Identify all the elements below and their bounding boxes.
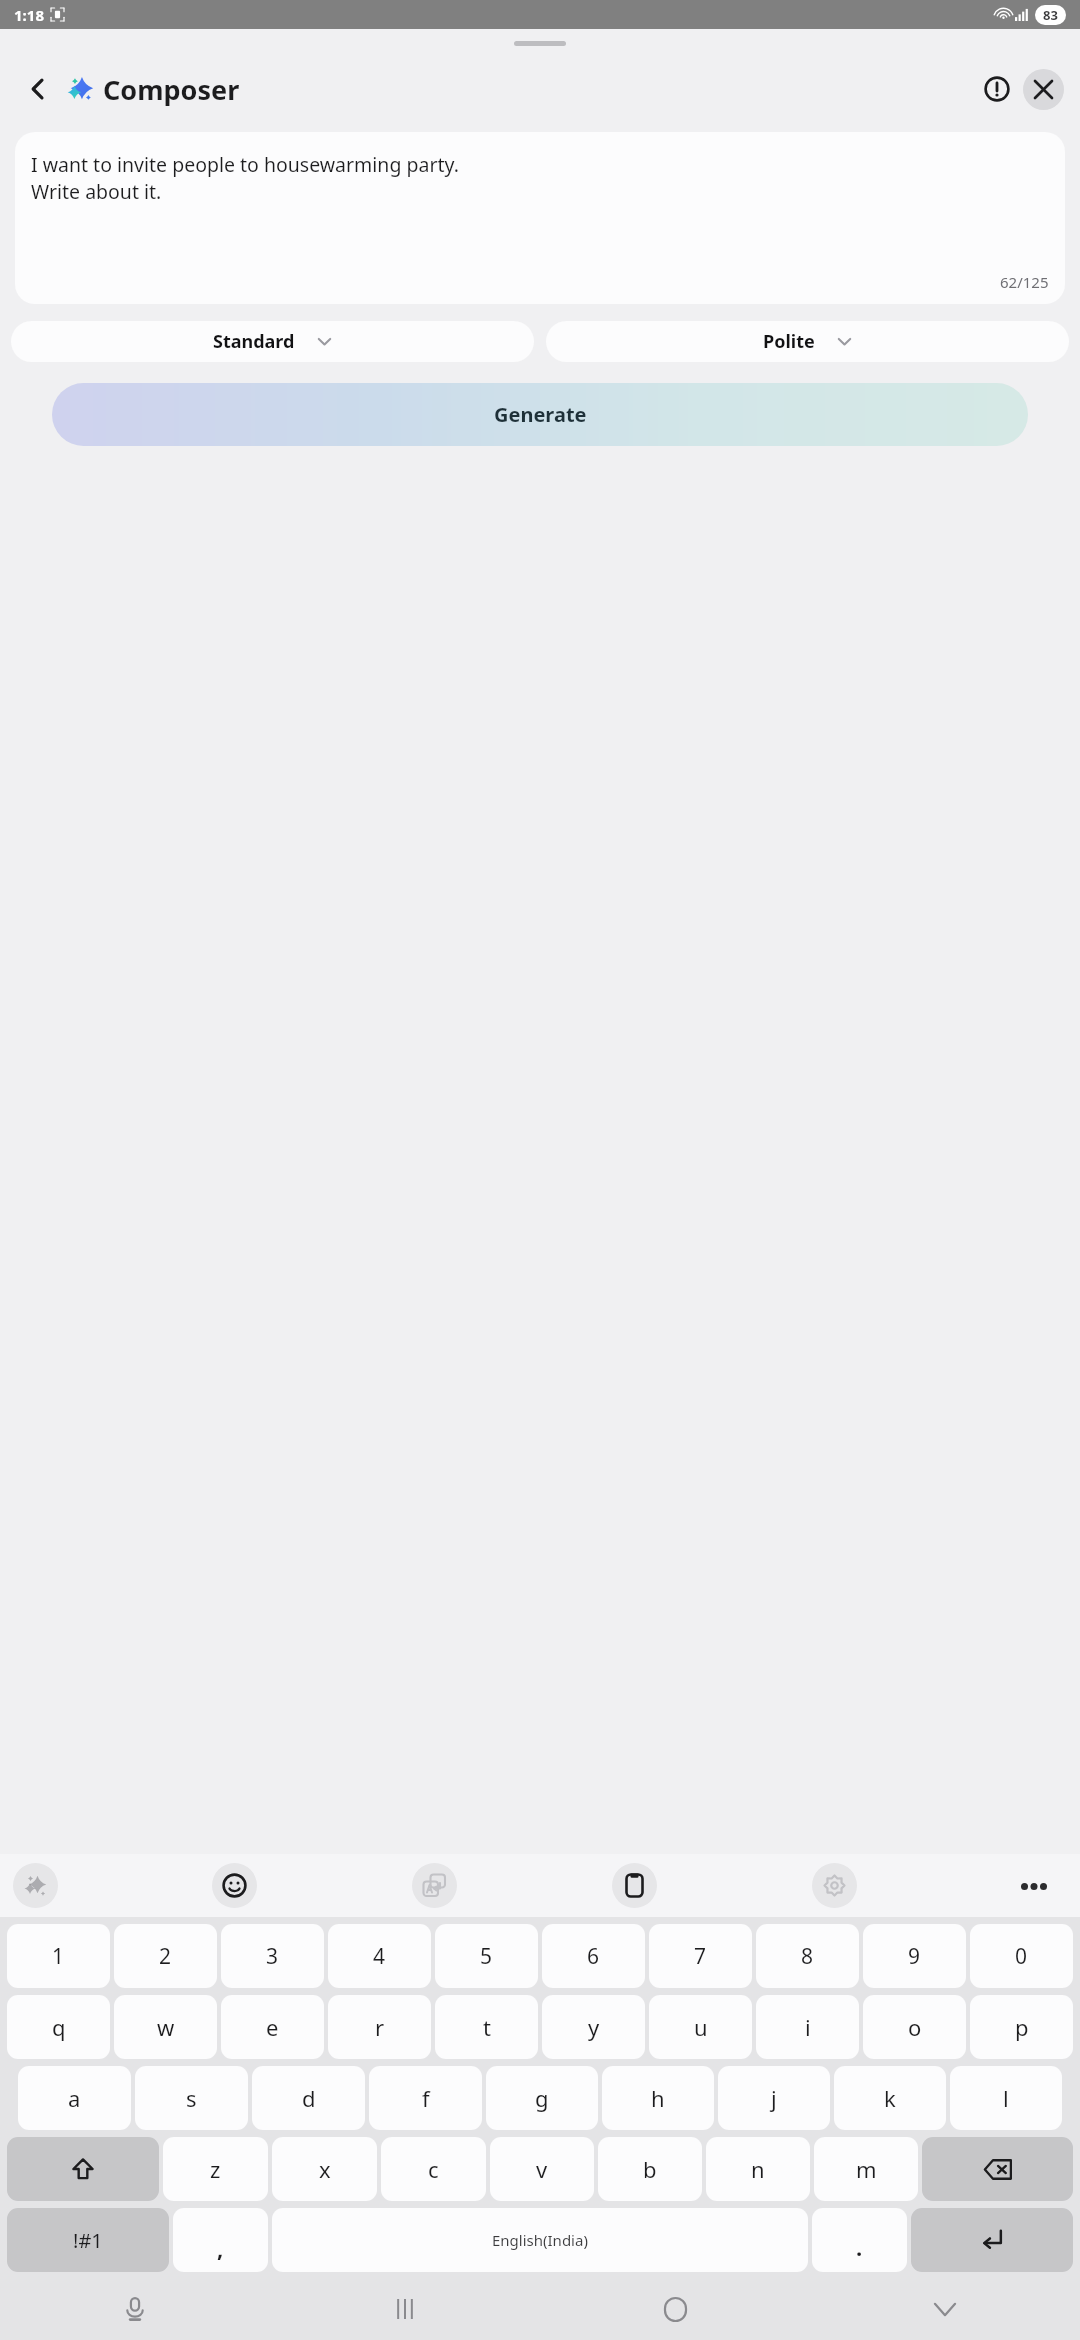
staticText: z (210, 2154, 221, 2184)
button[interactable]: 0 (970, 1924, 1073, 1988)
button[interactable]: Space (272, 2208, 808, 2272)
staticText: l (1003, 2083, 1009, 2113)
staticText: 2 (159, 1942, 172, 1971)
button[interactable]: 9 (863, 1924, 966, 1988)
button[interactable]: Back (16, 67, 60, 111)
button[interactable]: AI writing (13, 1863, 58, 1908)
staticText: e (266, 2012, 279, 2042)
staticText: d (302, 2083, 316, 2113)
button[interactable]: v (490, 2137, 594, 2201)
staticText: 1:18 (14, 5, 44, 25)
staticText: w (157, 2012, 175, 2042)
staticText: 7 (694, 1942, 707, 1971)
staticText: s (186, 2083, 197, 2113)
staticText: Composer (103, 71, 240, 108)
staticText: j (771, 2083, 777, 2113)
button[interactable]: Close (1023, 69, 1064, 110)
button[interactable]: g (486, 2066, 598, 2130)
button[interactable]: !#1 (7, 2208, 169, 2272)
button[interactable]: a (18, 2066, 131, 2130)
other: Shift (71, 2157, 95, 2181)
button[interactable]: Polite (546, 321, 1069, 362)
button[interactable]: More options (1012, 1864, 1056, 1908)
staticText: !#1 (73, 2227, 103, 2254)
button[interactable]: Information (975, 67, 1019, 111)
button[interactable]: p (970, 1995, 1073, 2059)
staticText: Standard (213, 329, 295, 354)
button[interactable]: b (598, 2137, 702, 2201)
button[interactable]: I want to invite people to housewarming … (15, 132, 1065, 304)
staticText: 3 (266, 1942, 279, 1971)
staticText: f (422, 2083, 430, 2113)
button[interactable]: Home (540, 2278, 810, 2340)
button[interactable]: o (863, 1995, 966, 2059)
button[interactable]: Shift (7, 2137, 159, 2201)
button[interactable]: Voice input (0, 2278, 270, 2340)
button[interactable]: k (834, 2066, 946, 2130)
staticText: 5 (480, 1942, 493, 1971)
button[interactable]: Enter (911, 2208, 1073, 2272)
button[interactable]: h (602, 2066, 714, 2130)
button[interactable]: 2 (114, 1924, 217, 1988)
button[interactable]: 4 (328, 1924, 431, 1988)
other: Enter (979, 2227, 1005, 2253)
button[interactable]: , (173, 2208, 268, 2272)
button[interactable]: i (756, 1995, 859, 2059)
button[interactable]: d (252, 2066, 365, 2130)
other: Backspace (984, 2159, 1012, 2180)
button[interactable]: 1 (7, 1924, 110, 1988)
button[interactable]: c (381, 2137, 486, 2201)
staticText: g (535, 2083, 549, 2113)
button[interactable]: Emoji (212, 1863, 257, 1908)
button[interactable]: Hide keyboard (810, 2278, 1080, 2340)
button[interactable]: Clipboard (612, 1863, 657, 1908)
button[interactable]: q (7, 1995, 110, 2059)
button[interactable]: e (221, 1995, 324, 2059)
button[interactable]: u (649, 1995, 752, 2059)
button[interactable]: y (542, 1995, 645, 2059)
staticText: 9 (908, 1942, 921, 1971)
staticText: o (908, 2012, 922, 2042)
button[interactable]: l (950, 2066, 1062, 2130)
button[interactable]: Translate (412, 1863, 457, 1908)
staticText: b (643, 2154, 657, 2184)
staticText: 0 (1015, 1942, 1028, 1971)
button[interactable]: n (706, 2137, 810, 2201)
staticText: n (751, 2154, 765, 2184)
button[interactable]: 5 (435, 1924, 538, 1988)
staticText: u (694, 2012, 708, 2042)
button[interactable]: j (718, 2066, 830, 2130)
staticText: i (805, 2012, 811, 2042)
button[interactable]: Backspace (922, 2137, 1073, 2201)
button[interactable]: s (135, 2066, 248, 2130)
staticText: 4 (373, 1942, 386, 1971)
button[interactable]: x (272, 2137, 377, 2201)
staticText: y (588, 2012, 600, 2042)
staticText: 1 (52, 1942, 65, 1971)
staticText: 83 (1043, 6, 1058, 24)
button[interactable]: Settings (812, 1863, 857, 1908)
button[interactable]: r (328, 1995, 431, 2059)
staticText: x (319, 2154, 331, 2184)
button[interactable]: z (163, 2137, 268, 2201)
button[interactable]: 6 (542, 1924, 645, 1988)
staticText: I want to invite people to housewarming … (31, 151, 459, 205)
button[interactable]: 7 (649, 1924, 752, 1988)
button[interactable]: 3 (221, 1924, 324, 1988)
button[interactable]: t (435, 1995, 538, 2059)
staticText: Generate (494, 401, 587, 428)
button[interactable]: Recents (270, 2278, 540, 2340)
button[interactable]: . (812, 2208, 907, 2272)
staticText: t (483, 2012, 491, 2042)
button[interactable]: m (814, 2137, 918, 2201)
button[interactable]: Standard (11, 321, 534, 362)
staticText: h (651, 2083, 665, 2113)
button[interactable]: f (369, 2066, 482, 2130)
button[interactable]: Generate (52, 383, 1028, 446)
staticText: 62/125 (1000, 272, 1049, 292)
button[interactable]: w (114, 1995, 217, 2059)
button[interactable]: 8 (756, 1924, 859, 1988)
staticText: Polite (763, 329, 815, 354)
staticText: m (856, 2154, 877, 2184)
staticText: k (884, 2083, 896, 2113)
